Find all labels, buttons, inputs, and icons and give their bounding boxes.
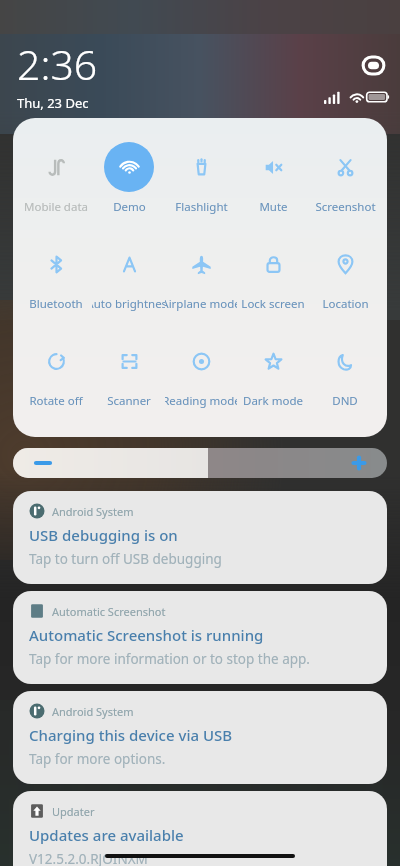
staticText: Mute [259, 199, 288, 215]
staticText: Demo [113, 199, 146, 215]
button[interactable]: Reading mode [165, 336, 237, 433]
staticText: Dark mode [243, 393, 303, 409]
other: Battery saver [362, 56, 385, 75]
staticText: DND [332, 393, 358, 409]
button[interactable]: Demo [92, 142, 165, 239]
staticText: Screenshot [315, 199, 376, 215]
staticText: Mobile data [24, 199, 88, 215]
button[interactable]: Rotate off [19, 336, 92, 433]
button[interactable]: Automatic Screenshot [13, 591, 387, 684]
staticText: Android System [52, 504, 134, 519]
staticText: Lock screen [241, 296, 305, 312]
staticText: Tap for more information or to stop the … [29, 650, 310, 668]
button[interactable]: Updater [13, 791, 387, 866]
staticText: Tap for more options. [29, 750, 166, 768]
staticText: Automatic Screenshot [52, 604, 166, 619]
button[interactable]: Location [309, 239, 381, 336]
staticText: Updates are available [29, 825, 184, 845]
staticText: Auto brightness [92, 296, 165, 312]
staticText: USB debugging is on [29, 525, 178, 545]
button[interactable]: Lock screen [237, 239, 309, 336]
button[interactable]: Flashlight [165, 142, 237, 239]
staticText: Automatic Screenshot is running [29, 625, 264, 645]
staticText: 2:36 [17, 36, 98, 92]
button[interactable]: Android System [13, 491, 387, 584]
staticText: Tap to turn off USB debugging [29, 550, 222, 568]
staticText: Charging this device via USB [29, 725, 233, 745]
staticText: Rotate off [29, 393, 83, 409]
button[interactable]: Android System [13, 691, 387, 784]
button[interactable]: Dark mode [237, 336, 309, 433]
staticText: Bluetooth [29, 296, 83, 312]
button[interactable]: Brightness [13, 448, 387, 478]
button[interactable]: DND [309, 336, 381, 433]
button[interactable]: Auto brightness [92, 239, 165, 336]
staticText: V12.5.2.0.RJOINXM [29, 850, 148, 866]
staticText: Android System [52, 704, 134, 719]
staticText: Location [322, 296, 369, 312]
staticText: Reading mode [165, 393, 237, 409]
staticText: Updater [52, 804, 95, 819]
staticText: Flashlight [175, 199, 228, 215]
button[interactable]: Mute [237, 142, 309, 239]
button[interactable]: Screenshot [309, 142, 381, 239]
button[interactable]: Scanner [92, 336, 165, 433]
staticText: Thu, 23 Dec [17, 94, 89, 112]
staticText: Scanner [107, 393, 151, 409]
button[interactable]: Bluetooth [19, 239, 92, 336]
staticText: Airplane mode [165, 296, 237, 312]
button[interactable]: Airplane mode [165, 239, 237, 336]
button[interactable]: Mobile data [19, 142, 92, 239]
